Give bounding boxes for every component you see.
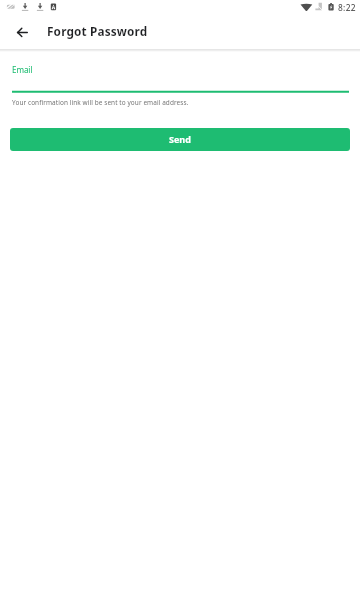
staticText: Email xyxy=(12,64,33,75)
staticText: Forgot Password xyxy=(47,23,148,39)
staticText: Send xyxy=(169,133,191,145)
button[interactable]: Email xyxy=(11,62,349,92)
staticText: Your confirmation link will be sent to y… xyxy=(12,98,189,107)
staticText: 8:22 xyxy=(338,2,356,13)
button[interactable]: Send xyxy=(10,128,350,151)
button[interactable]: Back xyxy=(11,22,33,44)
